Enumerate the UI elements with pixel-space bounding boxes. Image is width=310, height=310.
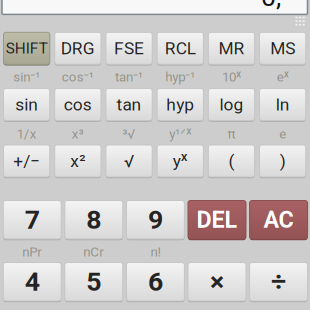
staticText: 9 bbox=[148, 204, 163, 235]
staticText: eˣ bbox=[277, 69, 289, 85]
staticText: π bbox=[227, 126, 235, 142]
staticText: hyp⁻¹ bbox=[165, 69, 195, 85]
staticText: DEL bbox=[196, 206, 237, 233]
staticText: hyp bbox=[166, 94, 194, 115]
button[interactable]: DEL bbox=[188, 200, 246, 239]
button[interactable]: tan bbox=[106, 88, 152, 120]
button[interactable]: DRG bbox=[55, 32, 101, 64]
staticText: 10ˣ bbox=[222, 69, 241, 85]
button[interactable]: SHIFT bbox=[3, 32, 50, 64]
button[interactable]: log bbox=[208, 88, 255, 120]
button[interactable]: hyp bbox=[157, 88, 203, 120]
button[interactable]: 7 bbox=[3, 200, 61, 239]
button[interactable]: × bbox=[188, 262, 246, 301]
staticText: × bbox=[210, 266, 224, 297]
button[interactable]: FSE bbox=[106, 32, 152, 64]
staticText: x² bbox=[70, 151, 85, 171]
staticText: x³ bbox=[72, 126, 84, 142]
staticText: 1/x bbox=[17, 126, 37, 142]
staticText: MR bbox=[218, 38, 244, 58]
staticText: cos⁻¹ bbox=[62, 69, 94, 85]
staticText: 7 bbox=[25, 204, 40, 235]
staticText: nCr bbox=[83, 244, 104, 260]
staticText: tan⁻¹ bbox=[115, 69, 143, 85]
staticText: yˣ bbox=[173, 151, 188, 171]
staticText: n! bbox=[150, 244, 160, 260]
staticText: y¹ᐟˣ bbox=[169, 126, 191, 142]
staticText: RCL bbox=[165, 38, 196, 58]
staticText: ³√ bbox=[122, 126, 135, 142]
staticText: ln bbox=[276, 94, 290, 115]
staticText: ) bbox=[280, 151, 286, 171]
staticText: ÷ bbox=[271, 266, 286, 297]
button[interactable]: 9 bbox=[126, 200, 184, 239]
staticText: 6 bbox=[148, 266, 163, 297]
button[interactable]: x² bbox=[55, 145, 101, 177]
button[interactable]: RCL bbox=[157, 32, 203, 64]
button[interactable]: yˣ bbox=[157, 145, 203, 177]
staticText: AC bbox=[264, 206, 294, 233]
button[interactable]: √ bbox=[106, 145, 152, 177]
button[interactable]: ÷ bbox=[250, 262, 308, 301]
staticText: √ bbox=[124, 151, 134, 171]
button[interactable]: 5 bbox=[65, 262, 123, 301]
button[interactable]: ln bbox=[259, 88, 306, 120]
staticText: 4 bbox=[25, 266, 40, 297]
button[interactable]: 6 bbox=[126, 262, 184, 301]
button[interactable]: AC bbox=[250, 200, 308, 239]
staticText: sin bbox=[15, 94, 38, 115]
staticText: DRG bbox=[61, 38, 95, 58]
staticText: MS bbox=[270, 38, 295, 58]
button[interactable]: MR bbox=[208, 32, 255, 64]
button[interactable]: 4 bbox=[3, 262, 61, 301]
button[interactable]: cos bbox=[55, 88, 101, 120]
button[interactable]: sin bbox=[3, 88, 50, 120]
staticText: nPr bbox=[22, 244, 42, 260]
staticText: cos bbox=[64, 94, 92, 115]
staticText: e bbox=[279, 126, 286, 142]
staticText: SHIFT bbox=[6, 39, 48, 57]
button[interactable]: +/− bbox=[3, 145, 50, 177]
staticText: 5 bbox=[86, 266, 101, 297]
staticText: ( bbox=[228, 151, 234, 171]
staticText: +/− bbox=[13, 151, 40, 171]
button[interactable]: MS bbox=[259, 32, 306, 64]
staticText: tan bbox=[116, 94, 141, 115]
staticText: 0, bbox=[261, 0, 281, 13]
button[interactable]: 8 bbox=[65, 200, 123, 239]
staticText: log bbox=[219, 94, 243, 115]
staticText: 8 bbox=[86, 204, 101, 235]
button[interactable]: ) bbox=[259, 145, 306, 177]
button[interactable]: ( bbox=[208, 145, 255, 177]
staticText: sin⁻¹ bbox=[13, 69, 40, 85]
staticText: FSE bbox=[114, 38, 144, 58]
